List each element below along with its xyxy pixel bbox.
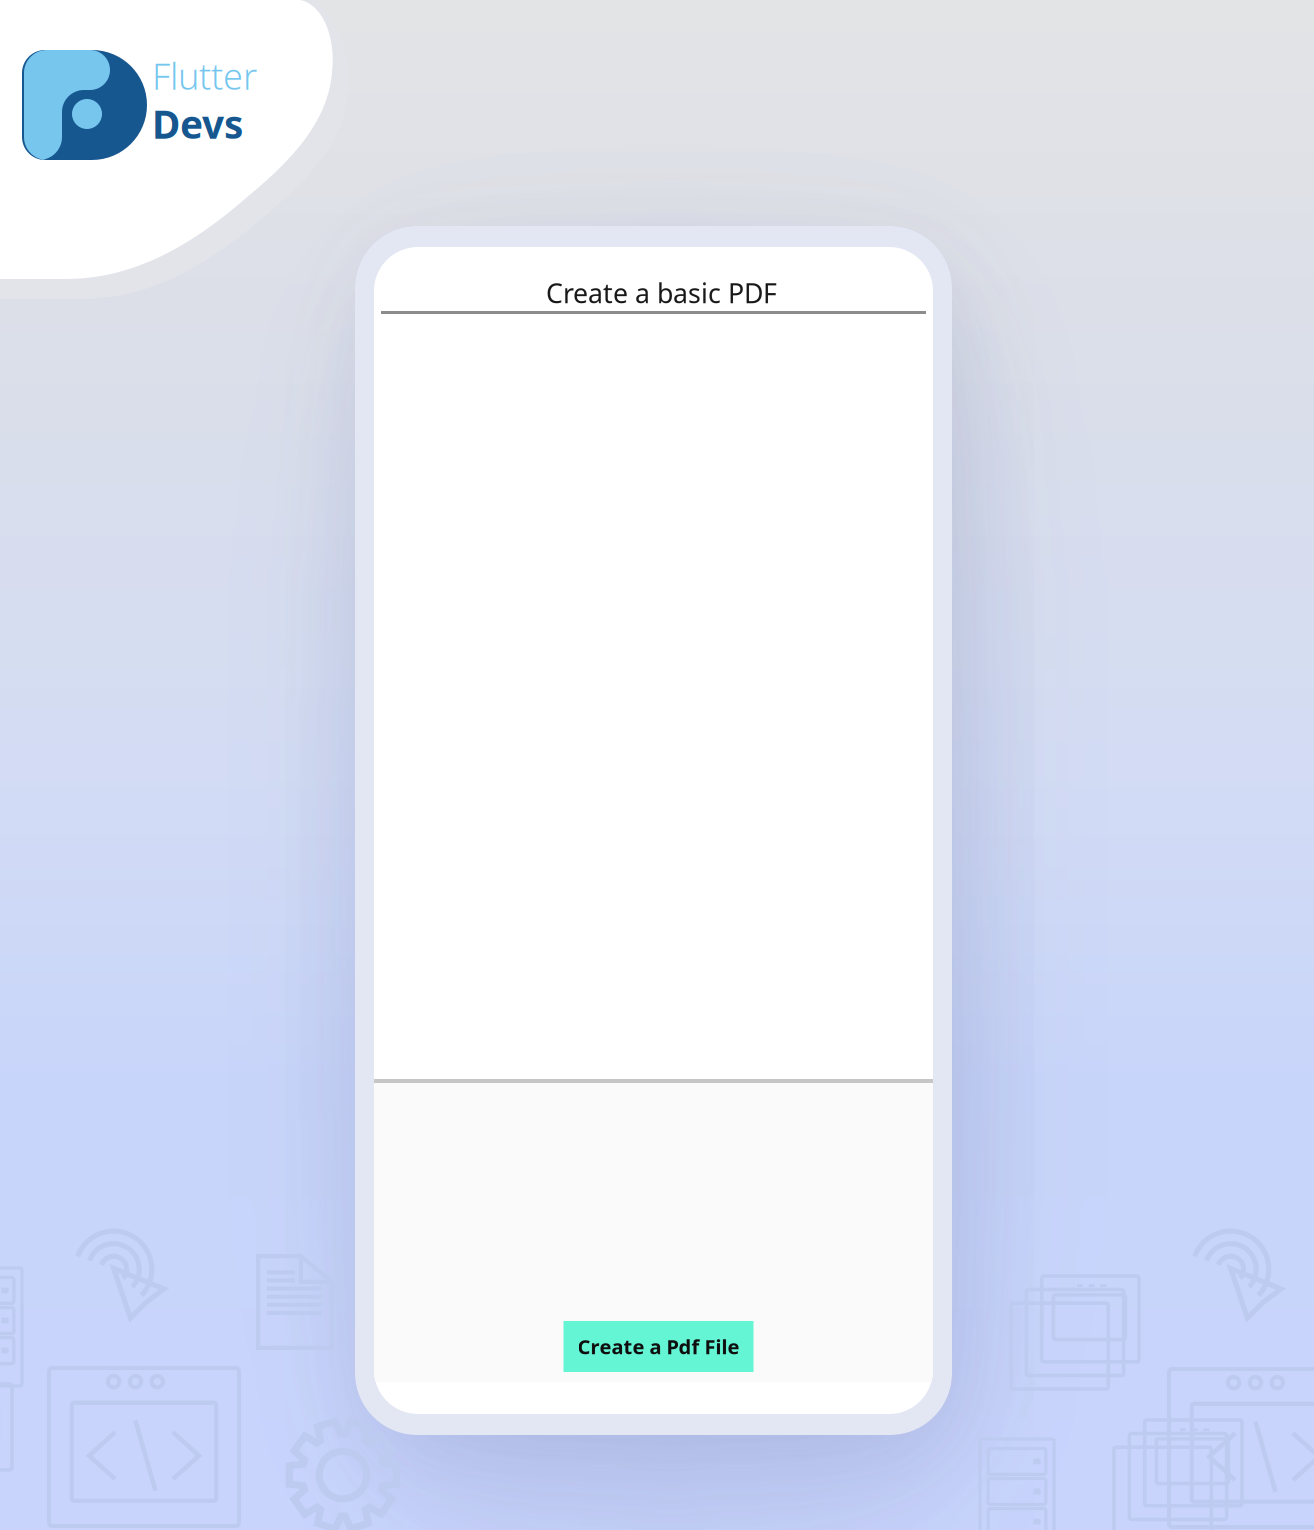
staticText: Create a Pdf File [577,1333,739,1360]
staticText: Flutter [152,52,257,100]
staticText: Create a basic PDF [546,275,777,311]
button[interactable]: Create a Pdf File [563,1321,753,1372]
staticText: Devs [152,98,243,149]
